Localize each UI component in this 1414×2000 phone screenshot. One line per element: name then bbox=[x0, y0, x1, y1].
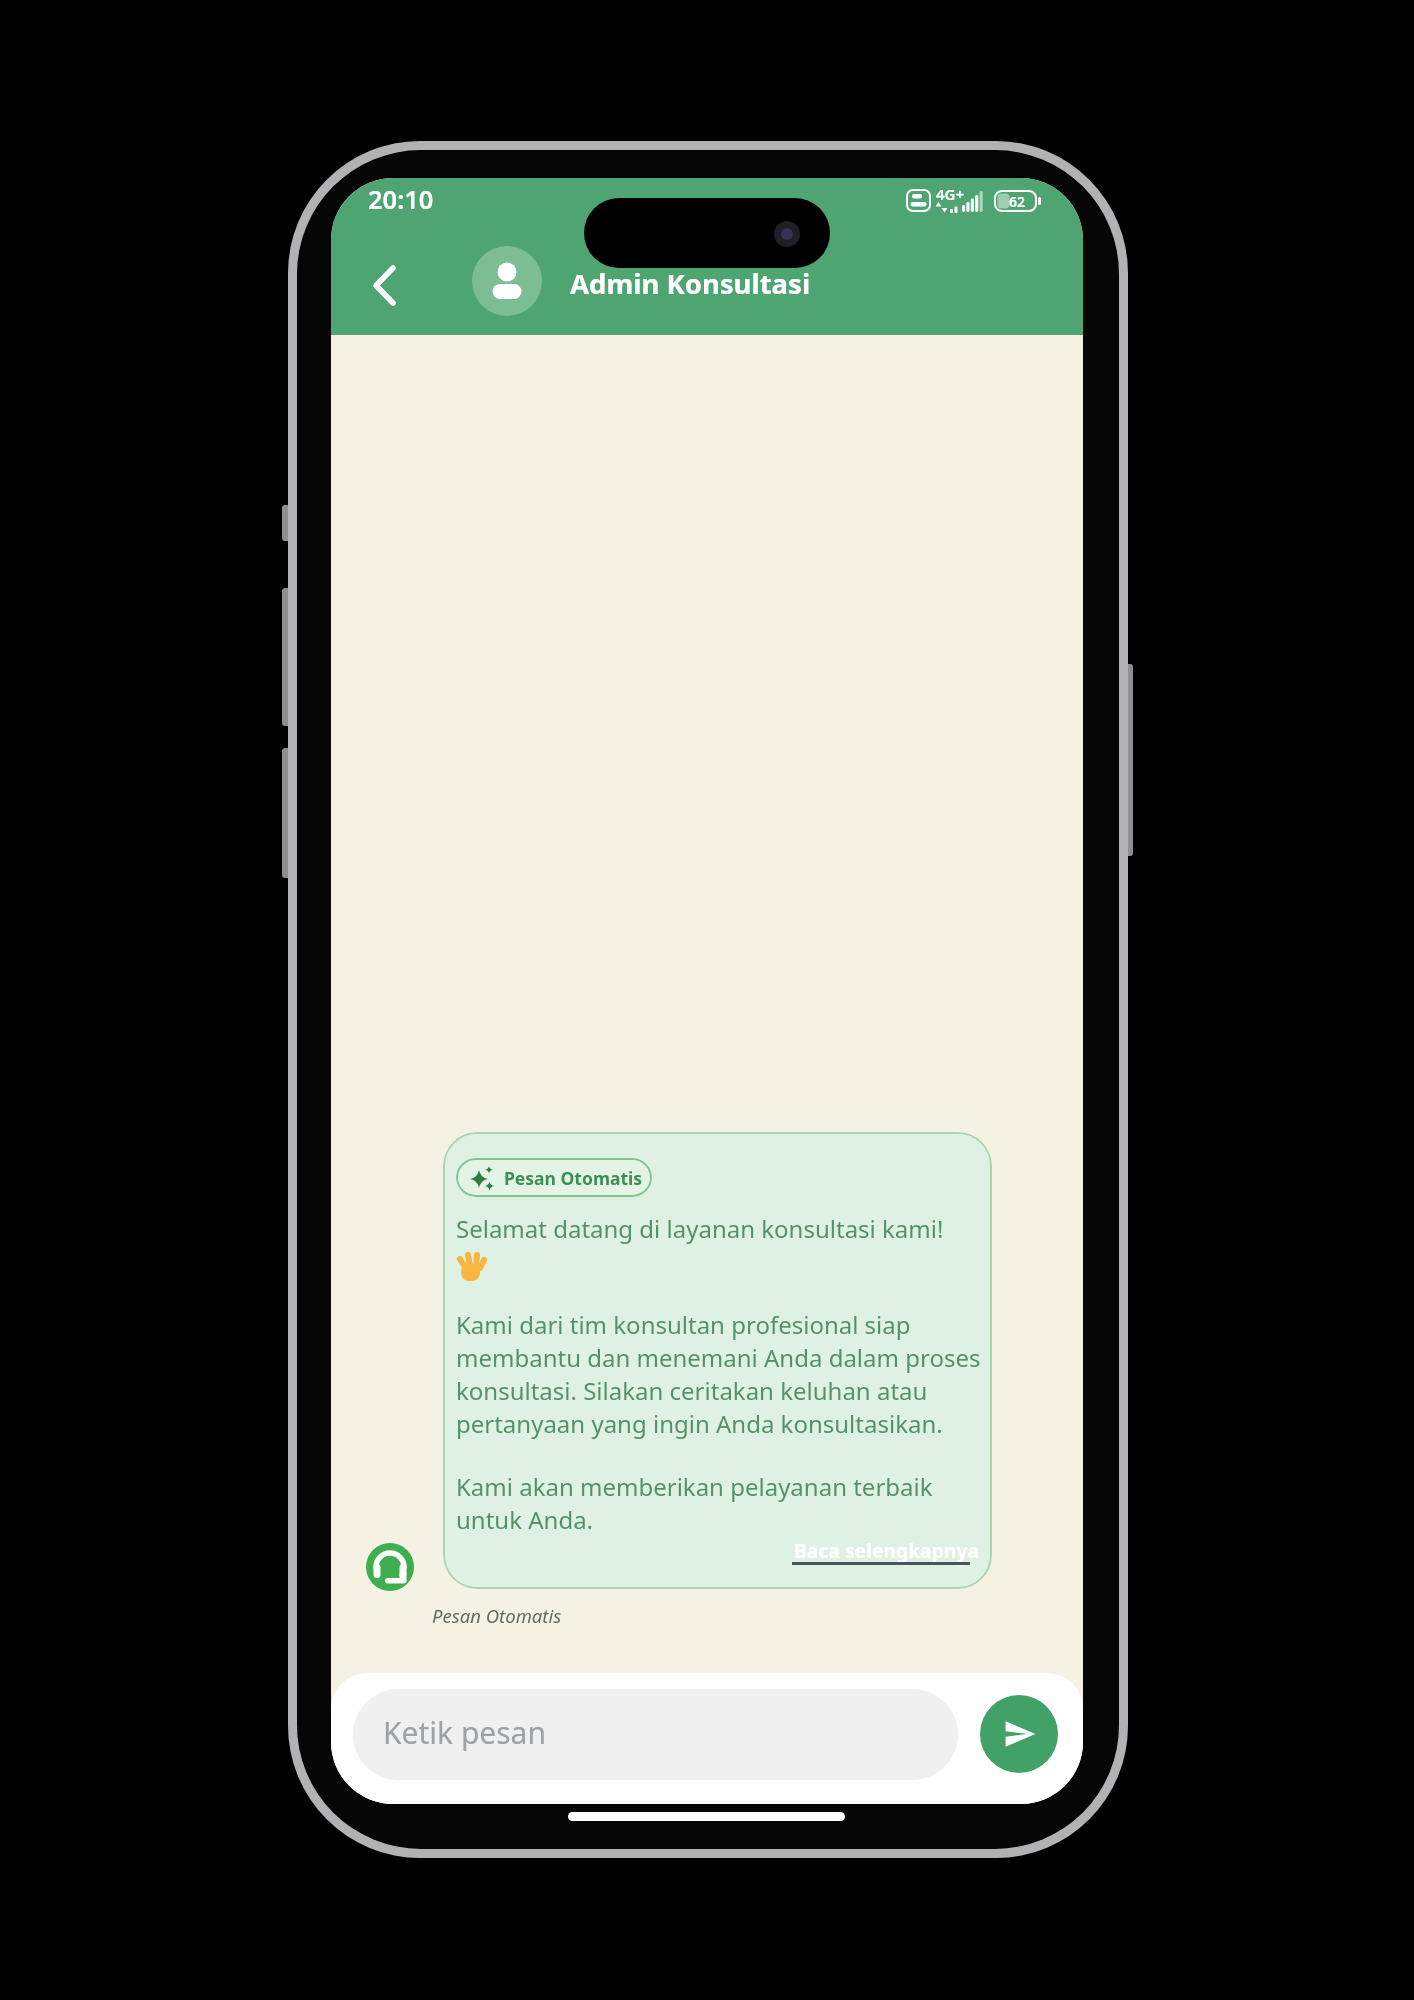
staticText: Pesan Otomatis bbox=[432, 1603, 562, 1628]
staticText: Selamat datang di layanan konsultasi kam… bbox=[456, 1212, 944, 1245]
staticText: 62 bbox=[1009, 192, 1026, 211]
staticText: 4G+ bbox=[936, 184, 965, 204]
staticText: 20:10 bbox=[368, 182, 434, 217]
button[interactable]: Pesan Otomatis bbox=[456, 1158, 652, 1197]
button[interactable]: Baca selengkapnya bbox=[443, 1132, 628, 1158]
staticText: Kami akan memberikan pelayanan terbaik u… bbox=[456, 1470, 933, 1536]
button[interactable] bbox=[353, 1689, 958, 1780]
button[interactable] bbox=[980, 1695, 1058, 1773]
staticText: Ketik pesan bbox=[383, 1712, 546, 1753]
button[interactable] bbox=[361, 258, 411, 310]
staticText: Admin Konsultasi bbox=[570, 265, 811, 302]
staticText: Pesan Otomatis bbox=[504, 1166, 643, 1190]
staticText: Kami dari tim konsultan profesional siap… bbox=[456, 1308, 981, 1440]
